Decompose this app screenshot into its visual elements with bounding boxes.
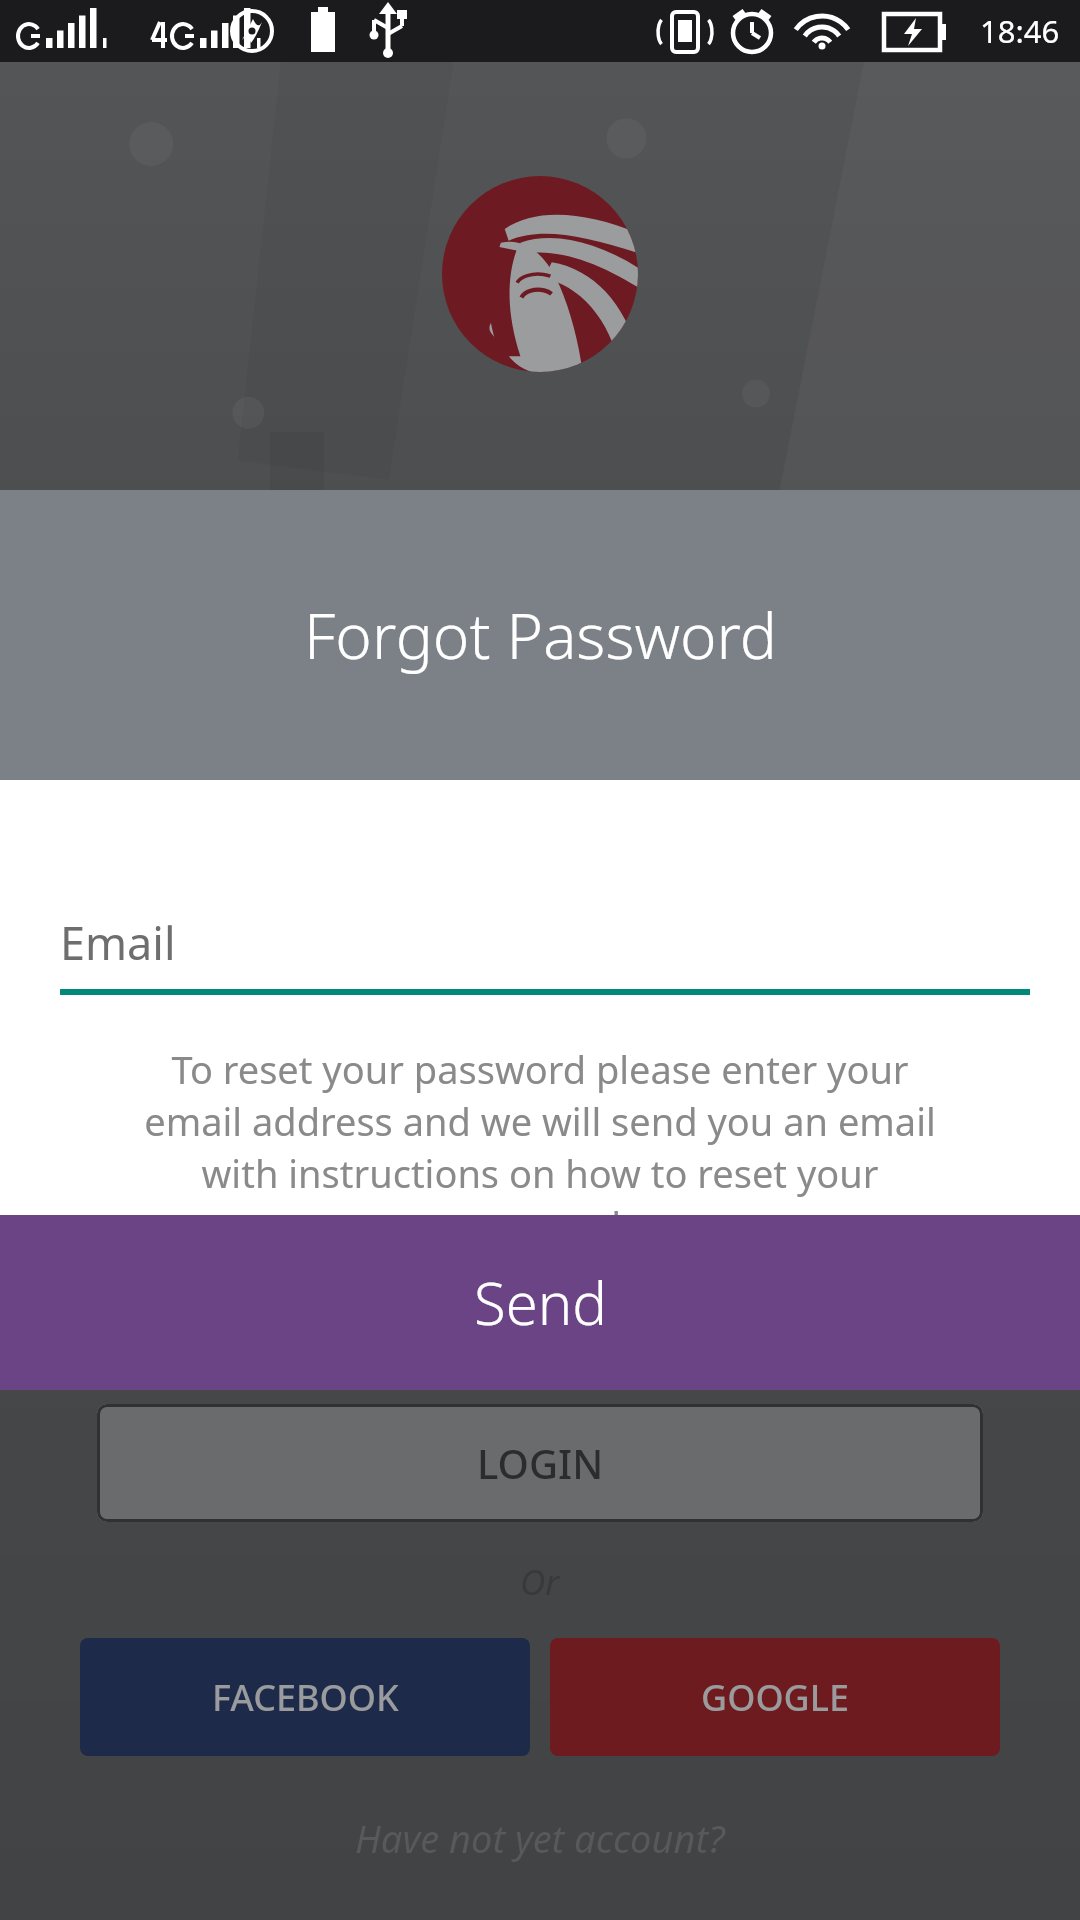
staticText: LOGIN [477,1436,604,1490]
staticText: Forgot Password [304,593,777,677]
staticText: 18:46 [980,10,1060,52]
button[interactable]: Have not yet account? [315,1804,765,1872]
staticText: Send [474,1263,607,1342]
button[interactable]: LOGIN [97,1404,983,1522]
button[interactable]: Email [60,912,1030,995]
staticText: Email [60,912,176,973]
staticText: FACEBOOK [212,1673,399,1722]
button[interactable]: Send [0,1215,1080,1390]
staticText: GOOGLE [701,1673,850,1722]
staticText: To reset your password please enter your… [120,1043,960,1215]
staticText: Or [520,1558,560,1606]
button[interactable]: FACEBOOK [80,1638,530,1756]
button[interactable]: GOOGLE [550,1638,1000,1756]
staticText: Have not yet account? [355,1812,725,1864]
